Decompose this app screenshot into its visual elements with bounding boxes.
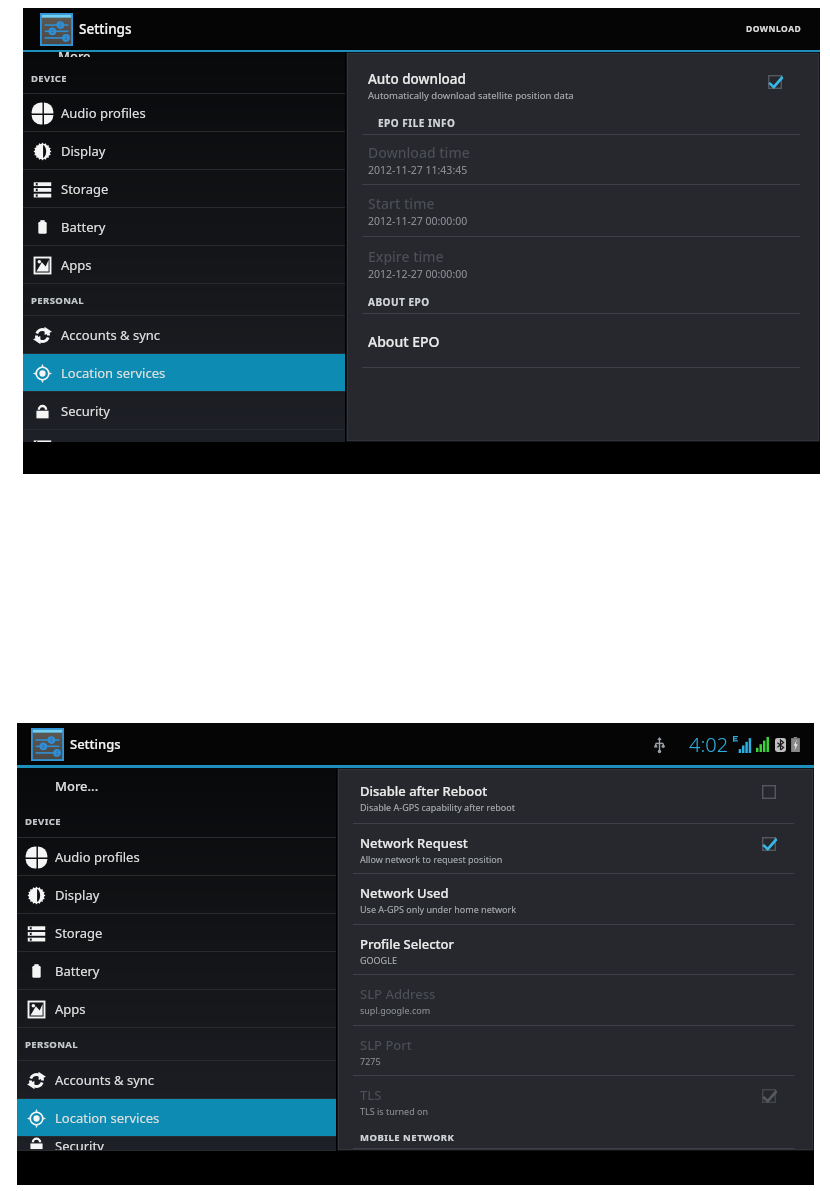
- staticText: 7275: [360, 1055, 381, 1067]
- staticText: PERSONAL: [31, 294, 85, 307]
- staticText: Network Request: [360, 834, 468, 852]
- staticText: Network Used: [360, 884, 449, 902]
- button[interactable]: Accounts & sync: [17, 1061, 336, 1099]
- staticText: About EPO: [368, 332, 440, 351]
- button[interactable]: Location services: [23, 354, 345, 392]
- staticText: DOWNLOAD: [746, 23, 802, 35]
- button[interactable]: Profile Selector: [339, 925, 812, 975]
- staticText: Disable A-GPS capability after reboot: [360, 801, 515, 813]
- button[interactable]: Network Request: [339, 824, 812, 874]
- button[interactable]: DOWNLOAD: [736, 17, 812, 41]
- staticText: Battery: [55, 962, 100, 980]
- button[interactable]: Auto download: [348, 56, 818, 112]
- button[interactable]: Security: [23, 392, 345, 430]
- staticText: Automatically download satellite positio…: [368, 89, 574, 102]
- staticText: Audio profiles: [55, 848, 140, 866]
- button[interactable]: Language & input: [23, 430, 345, 442]
- other: Bluetooth: [775, 738, 786, 752]
- button[interactable]: More...: [23, 52, 345, 62]
- other: Battery charging: [790, 737, 801, 752]
- staticText: Accounts & sync: [55, 1071, 155, 1089]
- staticText: 4:02: [689, 731, 729, 758]
- button[interactable]: Location services: [17, 1099, 336, 1137]
- staticText: Auto download: [368, 70, 466, 88]
- button[interactable]: Expire time: [348, 237, 818, 290]
- button[interactable]: Security: [17, 1137, 336, 1151]
- staticText: Settings: [70, 735, 121, 753]
- staticText: Apps: [61, 256, 92, 274]
- staticText: 2012-12-27 00:00:00: [368, 267, 468, 281]
- staticText: Disable after Reboot: [360, 782, 488, 800]
- staticText: DEVICE: [31, 72, 67, 85]
- other: USB connected: [654, 737, 665, 753]
- staticText: GOOGLE: [360, 954, 397, 966]
- staticText: Settings: [79, 20, 132, 38]
- staticText: Storage: [61, 180, 109, 198]
- staticText: Display: [55, 886, 100, 904]
- staticText: 2012-11-27 11:43:45: [368, 163, 468, 177]
- staticText: MOBILE NETWORK: [360, 1131, 455, 1144]
- staticText: Expire time: [368, 247, 444, 266]
- button[interactable]: Apps: [17, 990, 336, 1028]
- button[interactable]: SLP Address: [339, 975, 812, 1026]
- staticText: More...: [55, 777, 99, 795]
- button[interactable]: Network Used: [339, 874, 812, 925]
- button[interactable]: Download time: [348, 135, 818, 185]
- staticText: SLP Address: [360, 985, 436, 1003]
- staticText: TLS is turned on: [360, 1105, 429, 1117]
- button[interactable]: Start time: [348, 185, 818, 237]
- button[interactable]: Battery: [23, 208, 345, 246]
- staticText: Location services: [55, 1109, 160, 1127]
- button[interactable]: TLS: [339, 1076, 812, 1126]
- staticText: Use A-GPS only under home network: [360, 903, 517, 915]
- staticText: ABOUT EPO: [368, 295, 430, 309]
- button[interactable]: SLP Port: [339, 1026, 812, 1076]
- staticText: supl.google.com: [360, 1004, 431, 1016]
- staticText: EPO FILE INFO: [378, 116, 456, 130]
- staticText: SLP Port: [360, 1036, 412, 1054]
- staticText: More...: [58, 52, 102, 57]
- button[interactable]: Apps: [23, 246, 345, 284]
- staticText: 2012-11-27 00:00:00: [368, 214, 468, 228]
- staticText: Profile Selector: [360, 935, 454, 953]
- staticText: Audio profiles: [61, 104, 146, 122]
- staticText: TLS: [360, 1086, 382, 1104]
- staticText: Allow network to request position: [360, 853, 503, 865]
- button[interactable]: Accounts & sync: [23, 316, 345, 354]
- staticText: DEVICE: [25, 815, 61, 828]
- button[interactable]: Battery: [17, 952, 336, 990]
- staticText: Language & input: [61, 440, 171, 452]
- button[interactable]: More...: [17, 768, 336, 805]
- staticText: Apps: [55, 1000, 86, 1018]
- button[interactable]: Disable after Reboot: [339, 770, 812, 824]
- button[interactable]: Storage: [23, 170, 345, 208]
- staticText: Security: [55, 1137, 104, 1151]
- button[interactable]: Audio profiles: [17, 838, 336, 876]
- button[interactable]: Audio profiles: [23, 94, 345, 132]
- staticText: Battery: [61, 218, 106, 236]
- button[interactable]: Storage: [17, 914, 336, 952]
- staticText: PERSONAL: [25, 1038, 79, 1051]
- staticText: Location services: [61, 364, 166, 382]
- staticText: Download time: [368, 143, 470, 162]
- button[interactable]: Display: [23, 132, 345, 170]
- staticText: Accounts & sync: [61, 326, 161, 344]
- staticText: Storage: [55, 924, 103, 942]
- staticText: Display: [61, 142, 106, 160]
- staticText: Start time: [368, 194, 435, 213]
- button[interactable]: Display: [17, 876, 336, 914]
- staticText: Security: [61, 402, 110, 420]
- button[interactable]: About EPO: [348, 314, 818, 368]
